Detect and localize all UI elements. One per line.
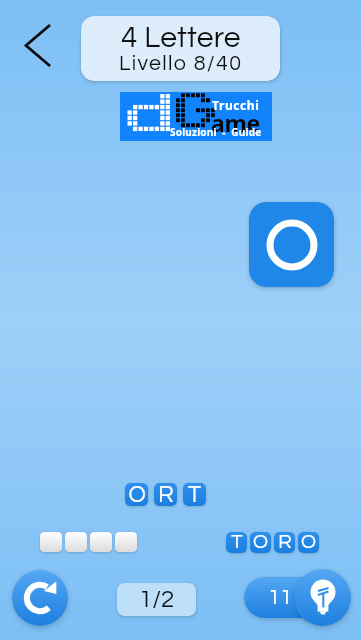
button[interactable]: T [183,483,206,506]
button[interactable] [249,202,334,287]
staticText: O [301,532,316,553]
button[interactable]: 4 Lettere [81,16,280,81]
staticText: 11 [268,586,293,609]
button[interactable] [65,532,87,552]
button[interactable]: Restart [12,570,68,626]
button[interactable]: Advertisement [120,92,272,141]
staticText: Soluzioni - Guide [170,125,262,139]
button[interactable] [115,532,137,552]
button[interactable] [90,532,112,552]
staticText: ame [211,107,261,138]
button[interactable]: O [250,532,271,553]
staticText: T [188,483,201,506]
staticText: O [253,532,268,553]
button[interactable]: R [154,483,177,506]
staticText: O [128,483,146,506]
button[interactable] [40,532,62,552]
button[interactable]: 11 [244,577,324,618]
button[interactable]: R [274,532,295,553]
button[interactable]: T [226,532,247,553]
button[interactable]: Hint [294,569,351,626]
staticText: 4 Lettere [121,22,241,53]
button[interactable]: O [298,532,319,553]
button[interactable]: 1/2 [117,583,196,616]
staticText: 1/2 [139,587,175,612]
staticText: T [231,532,243,553]
button[interactable]: Back [12,16,64,76]
staticText: Trucchi [212,97,260,113]
staticText: Livello 8/40 [119,52,243,74]
staticText: R [158,483,174,506]
staticText: R [278,532,292,553]
button[interactable]: O [125,483,148,506]
